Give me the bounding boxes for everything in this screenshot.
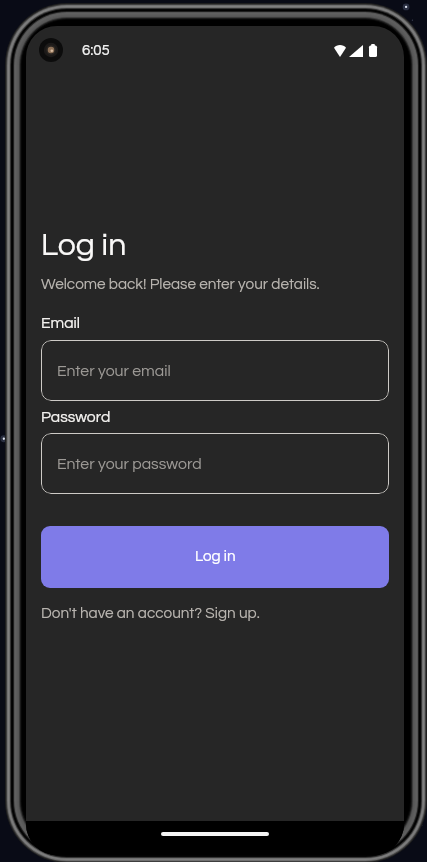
staticText: Email bbox=[41, 315, 80, 331]
other: Battery bbox=[369, 44, 377, 57]
staticText: Don't have an account? Sign up. bbox=[41, 605, 260, 621]
button[interactable]: Enter your password bbox=[41, 433, 389, 494]
staticText: Log in bbox=[41, 229, 127, 262]
staticText: Enter your password bbox=[57, 456, 202, 472]
staticText: Enter your email bbox=[57, 363, 171, 379]
staticText: Password bbox=[41, 409, 111, 425]
button[interactable]: Enter your email bbox=[41, 340, 389, 401]
button[interactable]: Log in bbox=[41, 526, 389, 588]
staticText: Log in bbox=[195, 549, 236, 565]
other: Wi-Fi bbox=[334, 45, 346, 57]
button[interactable]: Don't have an account? Sign up. bbox=[41, 605, 260, 621]
other: Mobile signal bbox=[349, 45, 363, 57]
staticText: Welcome back! Please enter your details. bbox=[41, 276, 320, 292]
staticText: 6:05 bbox=[82, 43, 110, 58]
